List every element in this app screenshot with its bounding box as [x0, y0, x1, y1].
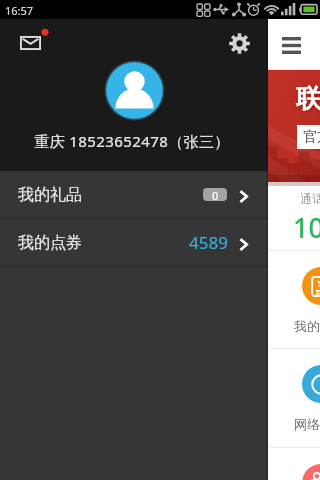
staticText: 网络优化 [294, 416, 320, 432]
staticText: 联通 [296, 83, 320, 114]
button[interactable]: 网络优化 [268, 349, 320, 446]
staticText: 16:57 [5, 3, 34, 18]
staticText: 102.5 [293, 209, 320, 246]
staticText: 通话(分钟) [300, 190, 320, 206]
button[interactable]: 通话(分钟) [268, 182, 320, 250]
staticText: 重庆 18523652478（张三） [0, 131, 266, 151]
button[interactable]: Messages [12, 23, 52, 63]
staticText: 我的礼品 [18, 185, 82, 205]
staticText: 0 [212, 188, 219, 201]
staticText: 官方营业厅 [303, 128, 320, 146]
button[interactable] [268, 448, 320, 480]
staticText: 我的点券 [18, 233, 82, 253]
button[interactable]: Profile avatar [104, 60, 165, 121]
button[interactable]: 我的账单 [268, 251, 320, 348]
button[interactable]: Open navigation menu [273, 27, 309, 63]
button[interactable]: Settings [219, 23, 259, 63]
button[interactable]: 我的礼品 [0, 171, 268, 218]
staticText: 我的账单 [294, 318, 320, 334]
staticText: 4589 [189, 231, 228, 254]
button[interactable]: 我的点券 [0, 219, 268, 266]
